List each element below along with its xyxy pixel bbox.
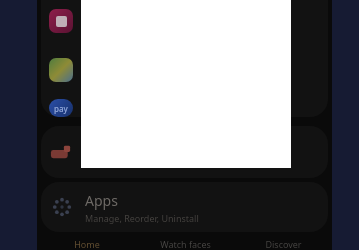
button[interactable]: App: [49, 58, 73, 82]
button[interactable]: App: [41, 0, 328, 117]
button[interactable]: Watch faces: [136, 232, 234, 250]
staticText: Discover: [265, 238, 302, 250]
staticText: Apps: [85, 191, 118, 210]
button[interactable]: App: [49, 9, 73, 33]
button[interactable]: Google Pay: [49, 99, 73, 117]
button[interactable]: Maps: [49, 140, 73, 164]
staticText: pay: [54, 103, 68, 114]
other: Apps: [51, 196, 73, 218]
staticText: Manage, Reorder, Uninstall: [85, 212, 199, 224]
button[interactable]: Apps: [41, 182, 328, 232]
staticText: Watch faces: [160, 238, 211, 250]
button[interactable]: Home: [37, 232, 136, 250]
button[interactable]: Maps: [41, 126, 328, 178]
button[interactable]: Discover: [234, 232, 332, 250]
staticText: Home: [74, 238, 100, 250]
